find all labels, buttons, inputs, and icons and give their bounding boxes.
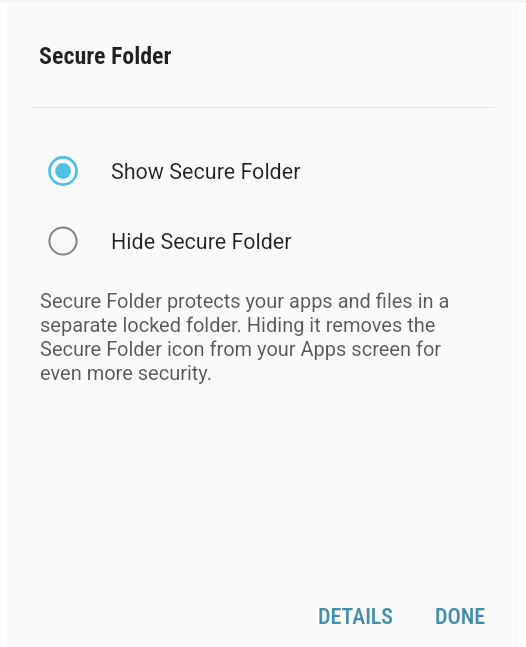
button[interactable]: DETAILS: [306, 595, 406, 639]
staticText: Show Secure Folder: [111, 159, 301, 184]
button[interactable]: Hide Secure Folder: [7, 218, 519, 264]
staticText: Hide Secure Folder: [111, 229, 292, 254]
staticText: Secure Folder protects your apps and fil…: [40, 289, 460, 385]
button[interactable]: Show Secure Folder: [7, 148, 519, 194]
staticText: Secure Folder: [39, 42, 172, 70]
staticText: DETAILS: [318, 604, 394, 630]
staticText: DONE: [435, 604, 486, 630]
button[interactable]: DONE: [423, 595, 498, 639]
